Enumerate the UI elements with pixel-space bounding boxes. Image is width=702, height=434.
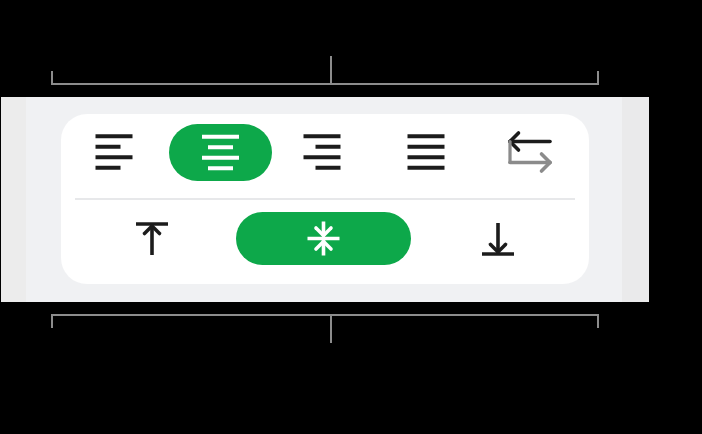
button[interactable]: Align middle <box>236 212 411 265</box>
button[interactable]: Align right <box>275 122 369 182</box>
button[interactable]: Justify <box>379 122 473 182</box>
button[interactable]: Text direction <box>483 122 577 182</box>
button[interactable]: Align bottom <box>451 210 545 268</box>
button[interactable]: Align center <box>169 124 272 181</box>
button[interactable]: Align top <box>105 210 199 268</box>
button[interactable]: Align left <box>67 122 161 182</box>
